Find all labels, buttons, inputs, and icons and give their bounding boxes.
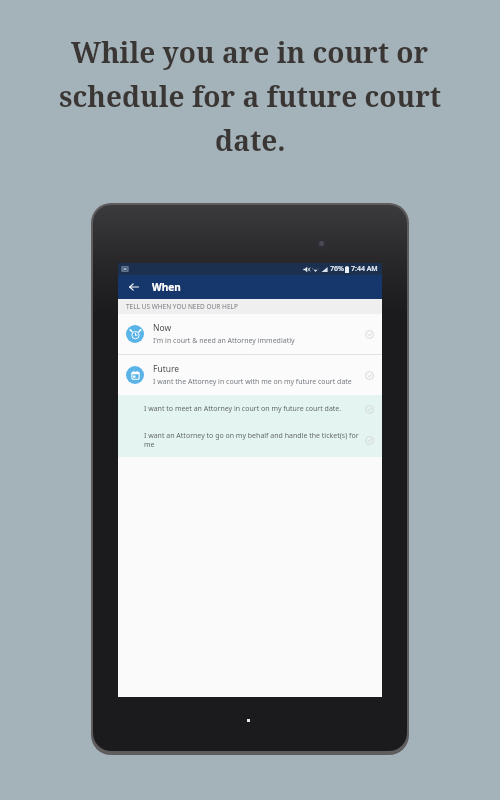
staticText: schedule for a future court [59,77,442,115]
staticText: date. [215,121,286,159]
button[interactable]: I want an Attorney to go on my behalf an… [118,423,382,457]
staticText: When [152,280,181,294]
button[interactable]: Now [118,314,382,354]
staticText: I want the Attorney in court with me on … [153,377,352,387]
staticText: I want to meet an Attorney in court on m… [144,404,342,414]
button[interactable]: I want to meet an Attorney in court on m… [118,395,382,423]
other: Select [365,371,374,380]
staticText: While you are in court or [71,33,429,71]
other: Select [365,330,374,339]
staticText: TELL US WHEN YOU NEED OUR HELP [126,302,238,311]
staticText: I want an Attorney to go on my behalf an… [144,431,359,449]
button[interactable]: Future [118,355,382,395]
staticText: Future [153,363,180,375]
staticText: Now [153,322,172,334]
staticText: 7:44 AM [351,264,378,274]
other: Select [365,436,374,445]
staticText: 76% [330,264,344,274]
staticText: I'm in court & need an Attorney immediat… [153,336,295,346]
button[interactable]: Back [126,279,142,295]
other: Select [365,405,374,414]
